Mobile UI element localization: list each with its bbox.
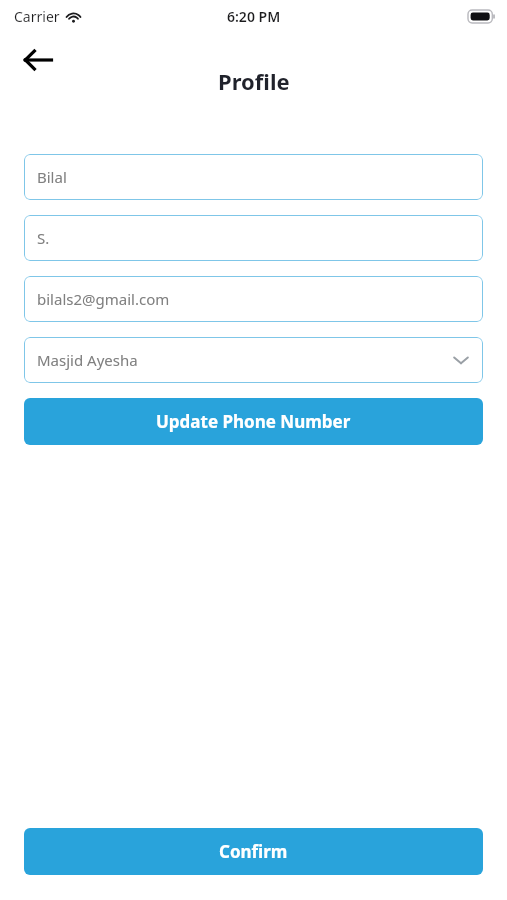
staticText: 6:20 PM <box>227 7 281 26</box>
staticText: Update Phone Number <box>156 410 351 433</box>
button[interactable]: bilals2@gmail.com <box>24 276 483 322</box>
staticText: Profile <box>218 66 290 96</box>
staticText: Confirm <box>219 840 288 863</box>
button[interactable]: Bilal <box>24 154 483 200</box>
button[interactable]: S. <box>24 215 483 261</box>
button[interactable]: Confirm <box>24 828 483 875</box>
staticText: Masjid Ayesha <box>37 350 452 370</box>
staticText: bilals2@gmail.com <box>37 289 470 309</box>
button[interactable]: Masjid Ayesha <box>24 337 483 383</box>
button[interactable]: Update Phone Number <box>24 398 483 445</box>
button[interactable]: Back <box>16 38 60 82</box>
staticText: S. <box>37 228 470 248</box>
staticText: Bilal <box>37 167 470 187</box>
staticText: Carrier <box>14 7 60 26</box>
